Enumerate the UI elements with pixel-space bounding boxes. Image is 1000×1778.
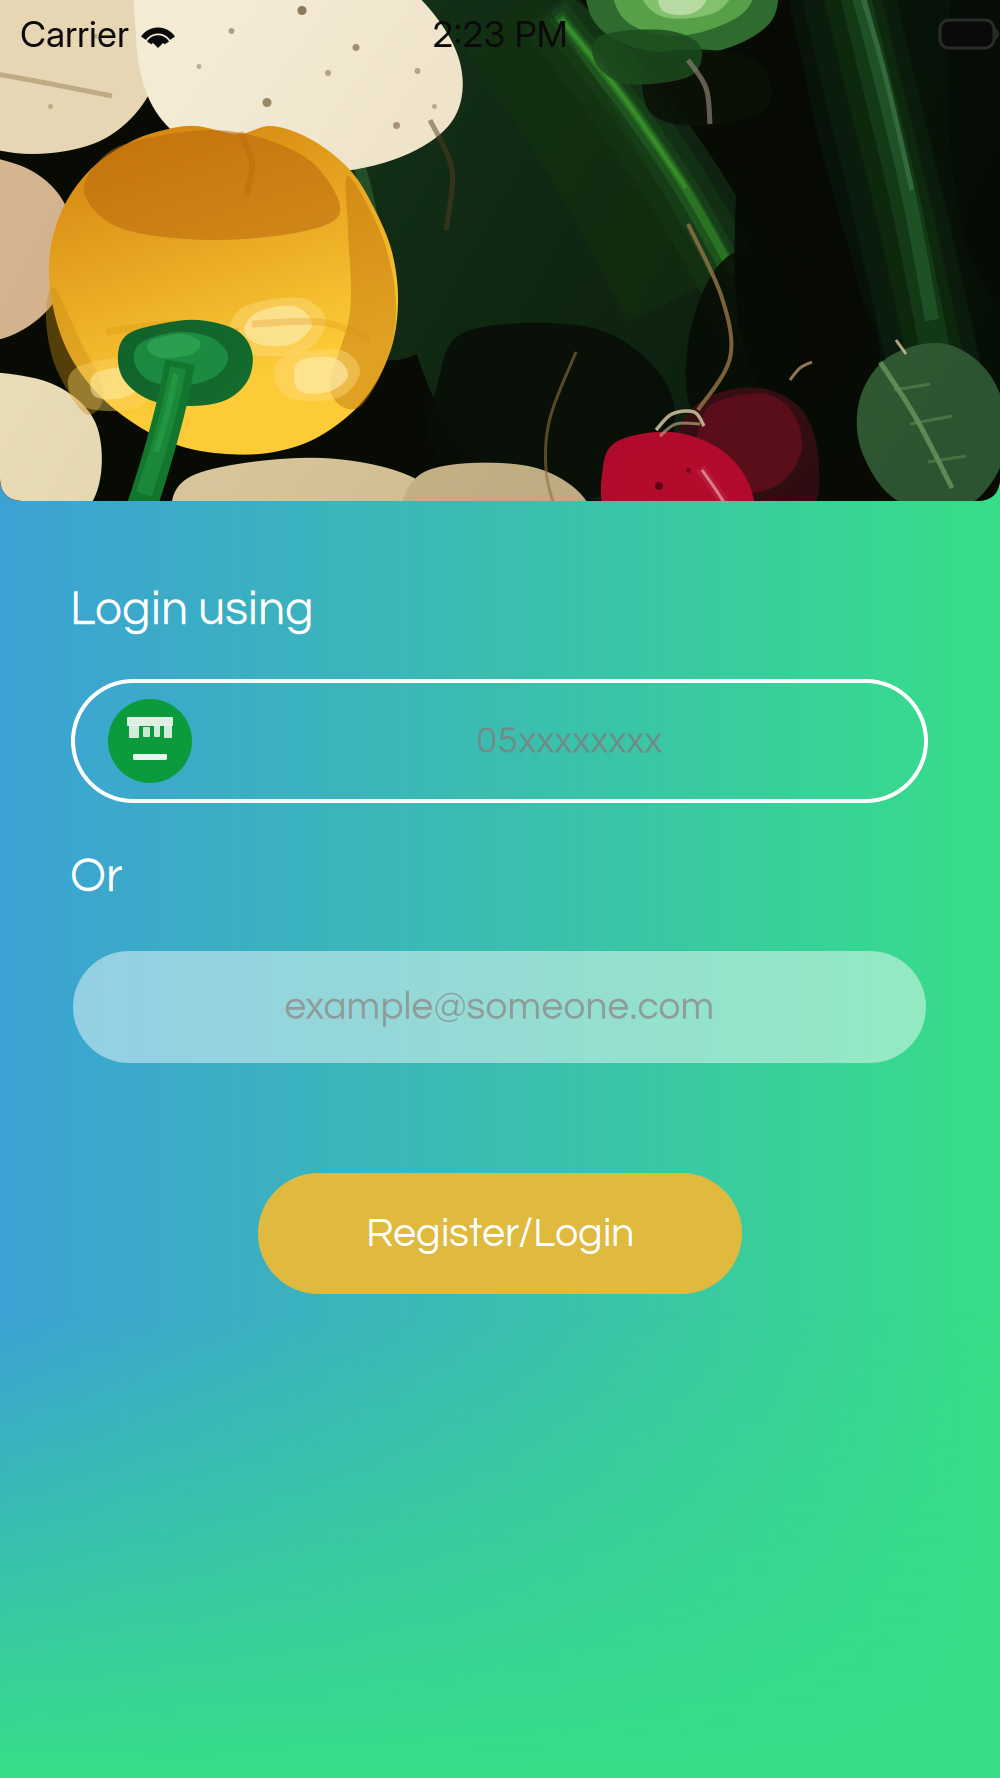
button[interactable]: Register/Login xyxy=(258,1173,742,1294)
button[interactable]: 05xxxxxxxx xyxy=(73,681,926,801)
staticText: example@someone.com xyxy=(284,987,714,1027)
staticText: Or xyxy=(70,852,123,901)
staticText: Carrier xyxy=(20,12,129,56)
staticText: 05xxxxxxxx xyxy=(476,722,662,760)
staticText: Register/Login xyxy=(366,1212,634,1255)
staticText: Login using xyxy=(70,585,314,634)
staticText: 2:23 PM xyxy=(432,12,567,56)
button[interactable]: example@someone.com xyxy=(73,951,926,1063)
